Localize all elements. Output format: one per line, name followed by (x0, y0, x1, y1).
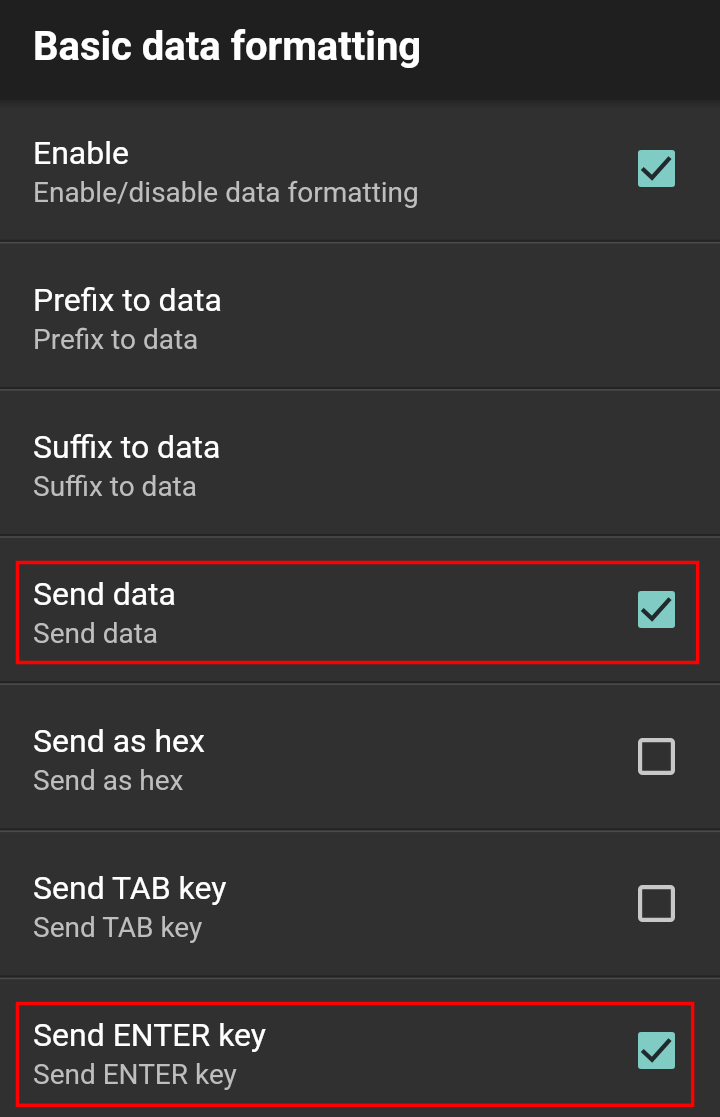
staticText: Send as hex (33, 722, 205, 760)
button[interactable]: Send data (0, 535, 720, 682)
staticText: Send data (33, 575, 176, 613)
button[interactable]: Send as hex (0, 682, 720, 829)
button[interactable]: Send data, checked (638, 591, 675, 628)
button[interactable]: Send ENTER key, checked (638, 1032, 675, 1069)
button[interactable]: Send TAB key, not checked (638, 885, 675, 922)
staticText: Enable/disable data formatting (33, 176, 419, 209)
button[interactable]: Enable, checked (638, 150, 675, 187)
staticText: Enable (33, 134, 129, 172)
button[interactable]: Prefix to data (0, 241, 720, 388)
button[interactable]: Send ENTER key (0, 976, 720, 1117)
staticText: Suffix to data (33, 428, 221, 466)
button[interactable]: Suffix to data (0, 388, 720, 535)
staticText: Suffix to data (33, 470, 198, 503)
staticText: Basic data formatting (33, 23, 422, 70)
staticText: Prefix to data (33, 281, 222, 319)
staticText: Send as hex (33, 764, 184, 797)
staticText: Send TAB key (33, 869, 227, 907)
button[interactable]: Send TAB key (0, 829, 720, 976)
button[interactable]: Enable (0, 94, 720, 241)
staticText: Send ENTER key (33, 1058, 237, 1091)
button[interactable]: Send as hex, not checked (638, 738, 675, 775)
staticText: Send ENTER key (33, 1016, 266, 1054)
staticText: Send data (33, 617, 159, 650)
staticText: Send TAB key (33, 911, 203, 944)
staticText: Prefix to data (33, 323, 199, 356)
